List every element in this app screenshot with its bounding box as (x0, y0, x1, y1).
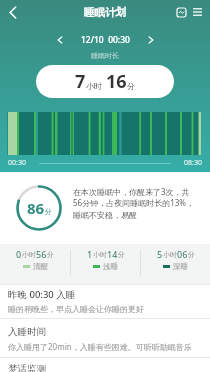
button[interactable] (53, 33, 67, 47)
staticText: 1 (87, 248, 93, 260)
button[interactable]: 梦话监测 (0, 358, 210, 372)
staticText: 0 (16, 248, 22, 260)
staticText: 你入睡用了20min，入睡有些困难。可听听助眠音乐 (8, 341, 192, 352)
staticText: 分 (118, 250, 125, 259)
staticText: 分 (188, 250, 195, 259)
button[interactable]: 7 (36, 65, 174, 98)
staticText: 睡眠计划 (84, 6, 126, 19)
button[interactable] (174, 5, 188, 19)
staticText: 入睡时间 (8, 326, 46, 338)
staticText: 5 (157, 248, 163, 260)
staticText: 小时 (93, 250, 107, 259)
staticText: 06 (177, 248, 188, 260)
button[interactable] (144, 33, 158, 47)
staticText: 深睡 (173, 262, 188, 271)
staticText: 小时 (22, 250, 36, 259)
staticText: 小时 (163, 250, 177, 259)
staticText: 小时 (86, 81, 102, 91)
staticText: 清醒 (33, 262, 48, 271)
staticText: 08:30 (184, 158, 202, 168)
staticText: 在本次睡眠中，你醒来了3次，共 56分钟，占夜间睡眠时长的13%， 睡眠不安稳，… (73, 186, 194, 220)
button[interactable]: 5 (141, 244, 210, 271)
staticText: 14 (107, 248, 118, 260)
staticText: 分 (127, 81, 135, 91)
staticText: 00:30 (8, 158, 26, 168)
staticText: 浅睡 (103, 262, 118, 271)
button[interactable]: 1 (71, 244, 140, 271)
staticText: 分 (47, 250, 54, 259)
staticText: 12/10 00:30 (81, 34, 130, 46)
button[interactable] (5, 4, 22, 21)
button[interactable]: 0 (0, 244, 70, 271)
staticText: 16 (106, 69, 127, 94)
staticText: 梦话监测 (8, 363, 46, 372)
button[interactable]: 昨晚 00:30 入睡 (0, 285, 210, 318)
staticText: 56 (36, 248, 47, 260)
staticText: 睡眠时长 (91, 51, 119, 60)
button[interactable] (190, 5, 204, 19)
staticText: 分 (45, 207, 52, 216)
button[interactable]: 入睡时间 (0, 319, 210, 357)
staticText: 睡的稍晚些，早点入睡会让你睡的更好 (8, 304, 144, 314)
staticText: 昨晚 00:30 入睡 (8, 288, 76, 301)
staticText: 86 (27, 198, 45, 218)
staticText: 7 (75, 69, 86, 94)
